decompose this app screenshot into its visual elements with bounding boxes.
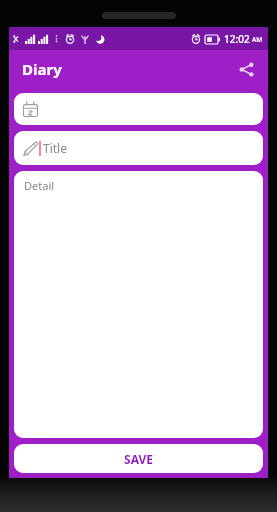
button[interactable]: Share <box>232 55 260 83</box>
staticText: Title <box>43 140 67 156</box>
staticText: Detail <box>24 178 55 193</box>
staticText: 12:02 <box>224 32 250 46</box>
button[interactable]: Pick date <box>14 93 263 125</box>
button[interactable]: Detail input <box>14 171 263 438</box>
button[interactable]: SAVE <box>14 444 263 473</box>
staticText: AM <box>252 35 263 44</box>
staticText: SAVE <box>124 451 153 467</box>
staticText: Diary <box>22 59 62 79</box>
button[interactable]: Title input <box>14 131 263 165</box>
